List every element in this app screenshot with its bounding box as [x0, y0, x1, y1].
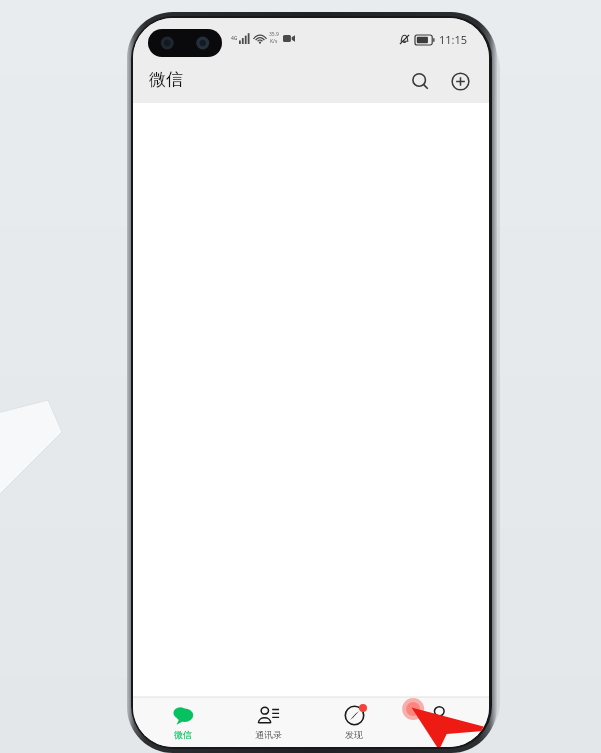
staticText: K/s — [270, 38, 278, 45]
button[interactable]: Add — [443, 64, 477, 98]
staticText: 通讯录 — [255, 729, 282, 740]
staticText: 35.9 — [269, 31, 279, 38]
staticText: 微信 — [174, 729, 192, 740]
button[interactable]: 微信 — [147, 697, 219, 747]
button[interactable]: 发现 — [318, 697, 390, 747]
staticText: 发现 — [345, 729, 363, 740]
staticText: 11:15 — [439, 32, 468, 47]
button[interactable]: 通讯录 — [232, 697, 304, 747]
staticText: 4G — [231, 35, 238, 42]
button[interactable]: 我 — [403, 697, 475, 747]
button[interactable]: Search — [403, 64, 437, 98]
staticText: 微信 — [149, 69, 183, 90]
